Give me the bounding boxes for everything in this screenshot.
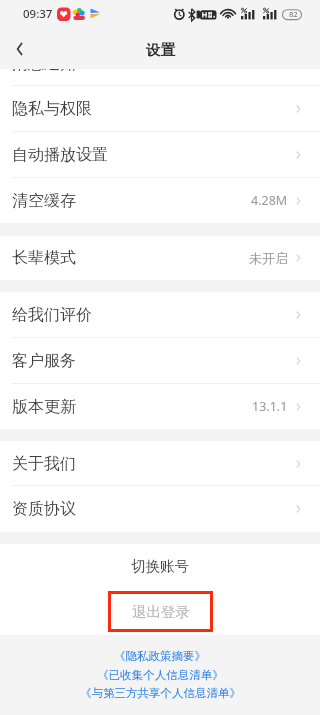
staticText: 隐私与权限 bbox=[12, 99, 92, 119]
button[interactable]: 消息通知 bbox=[0, 69, 320, 86]
button[interactable]: 长辈模式 bbox=[0, 236, 320, 280]
button[interactable]: 切换账号 bbox=[108, 553, 212, 579]
button[interactable]: Back bbox=[2, 31, 38, 67]
staticText: 09:37 bbox=[23, 6, 53, 22]
button[interactable]: 关于我们 bbox=[0, 441, 320, 486]
staticText: 关于我们 bbox=[12, 454, 76, 474]
staticText: 《与第三方共享个人信息清单》 bbox=[80, 686, 241, 700]
button[interactable]: 《已收集个人信息清单》 bbox=[0, 665, 320, 684]
staticText: 长辈模式 bbox=[12, 248, 76, 268]
button[interactable]: 自动播放设置 bbox=[0, 132, 320, 178]
staticText: 资质协议 bbox=[12, 499, 76, 519]
staticText: 客户服务 bbox=[12, 351, 76, 371]
button[interactable]: 退出登录 bbox=[108, 591, 213, 632]
staticText: 4.28M bbox=[251, 192, 288, 209]
button[interactable]: 资质协议 bbox=[0, 486, 320, 532]
staticText: 给我们评价 bbox=[12, 305, 92, 325]
staticText: 未开启 bbox=[249, 250, 288, 266]
staticText: 消息通知 bbox=[12, 54, 76, 71]
button[interactable]: 《与第三方共享个人信息清单》 bbox=[0, 683, 320, 702]
staticText: 版本更新 bbox=[12, 397, 76, 417]
button[interactable]: 清空缓存 bbox=[0, 178, 320, 223]
button[interactable]: 隐私与权限 bbox=[0, 86, 320, 132]
staticText: 《隐私政策摘要》 bbox=[114, 649, 206, 663]
staticText: 设置 bbox=[146, 41, 175, 59]
button[interactable]: 《隐私政策摘要》 bbox=[0, 646, 320, 665]
staticText: 清空缓存 bbox=[12, 191, 76, 211]
button[interactable]: 版本更新 bbox=[0, 384, 320, 429]
staticText: 《已收集个人信息清单》 bbox=[97, 668, 224, 682]
button[interactable]: 客户服务 bbox=[0, 338, 320, 384]
staticText: 退出登录 bbox=[132, 603, 190, 621]
staticText: 82 bbox=[289, 9, 298, 19]
staticText: 13.1.1 bbox=[252, 398, 288, 415]
staticText: 自动播放设置 bbox=[12, 145, 108, 165]
button[interactable]: 给我们评价 bbox=[0, 292, 320, 338]
staticText: 切换账号 bbox=[131, 557, 189, 575]
